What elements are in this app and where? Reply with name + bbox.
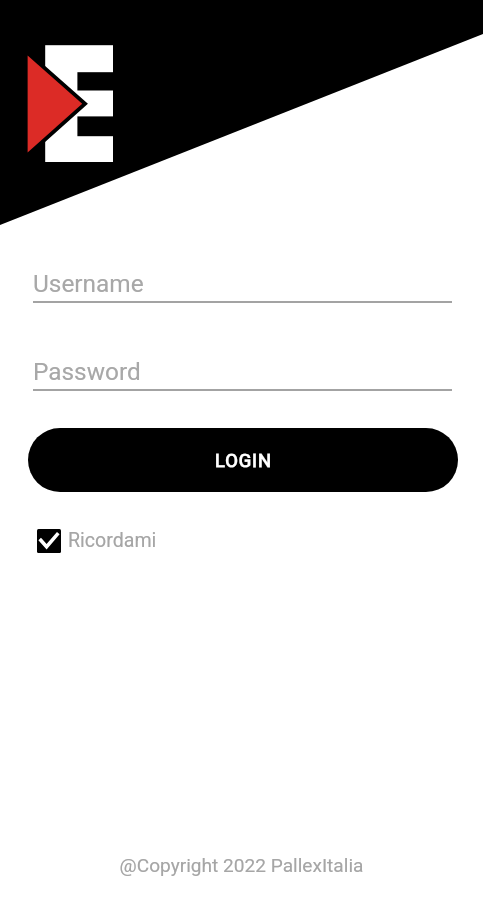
staticText: LOGIN [215,450,272,471]
staticText: Ricordami [68,529,157,552]
button[interactable]: Ricordami [33,523,157,557]
staticText: Password [33,357,141,386]
button[interactable]: Password [28,357,455,391]
staticText: @Copyright 2022 PallexItalia [0,854,483,876]
button[interactable]: Username [28,269,455,303]
staticText: Username [33,269,144,298]
button[interactable]: LOGIN [28,428,458,492]
